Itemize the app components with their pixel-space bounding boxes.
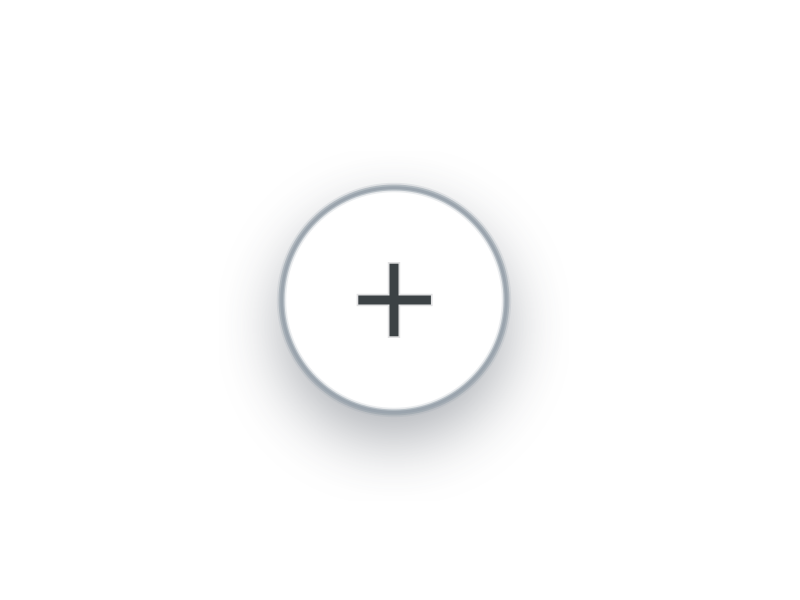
- button[interactable]: Add: [281, 187, 507, 413]
